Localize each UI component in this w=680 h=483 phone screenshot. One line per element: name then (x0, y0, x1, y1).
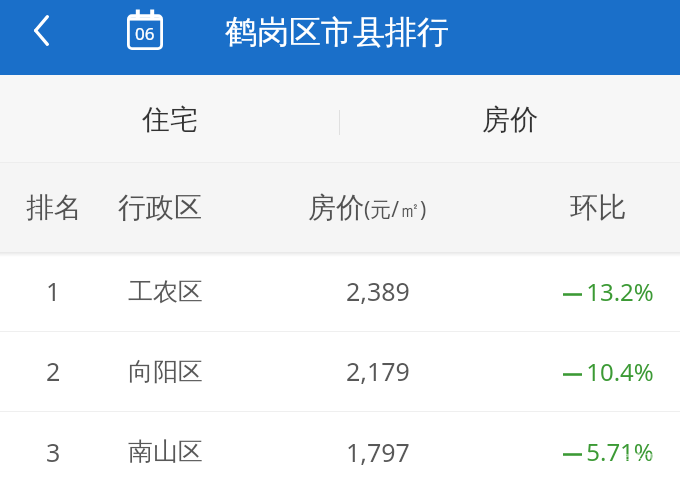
other: 下降 (563, 441, 582, 463)
button[interactable]: 房价 (340, 75, 680, 163)
other: Calendar, day 06 (127, 9, 163, 50)
staticText: 10.4% (586, 355, 654, 388)
staticText: 2,179 (346, 354, 410, 388)
staticText: 住宅 (142, 102, 198, 137)
other: 下降 (563, 281, 582, 303)
staticText: 房价(元/㎡) (308, 190, 427, 225)
staticText: 13.2% (586, 275, 654, 308)
staticText: 排名 (26, 190, 82, 225)
staticText: 工农区 (128, 276, 203, 307)
button[interactable]: 2 (0, 332, 680, 411)
staticText: 向阳区 (128, 356, 203, 387)
staticText: 1 (46, 274, 61, 308)
staticText: 2,389 (346, 274, 410, 308)
button[interactable]: 3 (0, 412, 680, 483)
staticText: 3 (46, 435, 61, 469)
button[interactable]: Back (15, 4, 67, 56)
staticText: 1,797 (346, 435, 410, 469)
staticText: 5.71% (586, 435, 654, 468)
button[interactable]: 住宅 (0, 75, 339, 163)
staticText: 06 (135, 22, 155, 45)
staticText: 南山区 (128, 436, 203, 467)
staticText: 房天下 (615, 451, 660, 470)
staticText: 行政区 (118, 190, 202, 225)
button[interactable]: 1 (0, 252, 680, 331)
other: 下降 (563, 361, 582, 383)
staticText: 房价 (482, 102, 538, 137)
staticText: 鹤岗区市县排行 (225, 12, 449, 52)
staticText: 2 (46, 354, 61, 388)
staticText: 环比 (570, 190, 626, 225)
